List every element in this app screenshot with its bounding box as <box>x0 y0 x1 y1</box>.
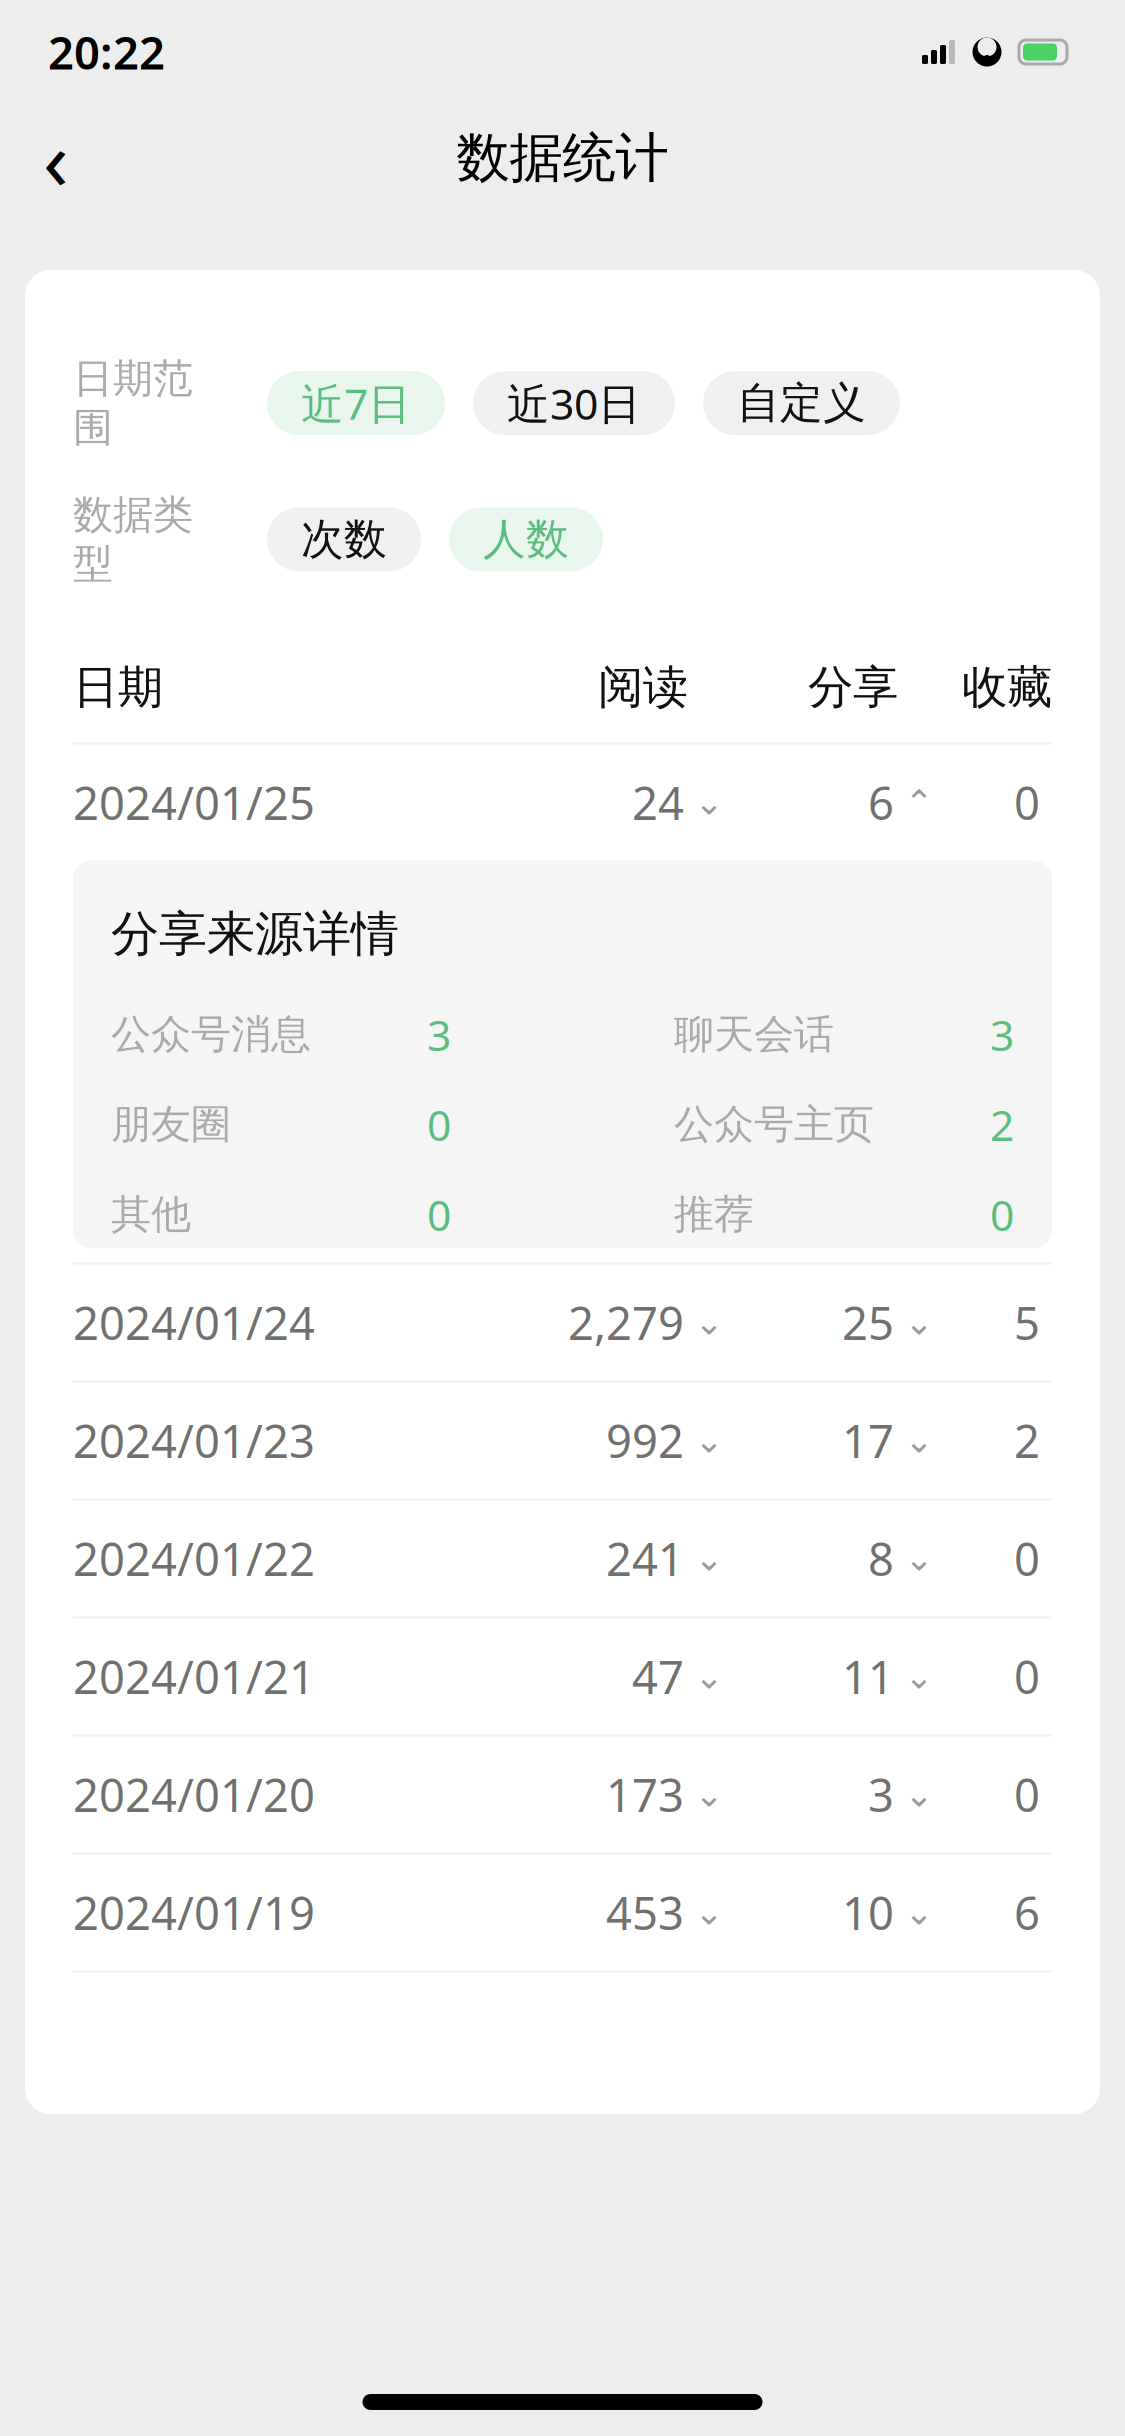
staticText: 6 <box>868 772 894 833</box>
staticText: 阅读 <box>598 660 688 715</box>
staticText: 近30日 <box>507 375 641 431</box>
button[interactable]: Back <box>18 120 94 196</box>
staticText: 0 <box>1014 772 1040 833</box>
staticText: 453 <box>606 1882 684 1943</box>
staticText: 0 <box>1014 1646 1040 1707</box>
staticText: 241 <box>606 1528 684 1589</box>
button[interactable]: 2024/01/21 <box>73 1618 1052 1734</box>
staticText: 聊天会话 <box>674 1010 834 1059</box>
staticText: ‹ <box>43 103 69 213</box>
staticText: 分享来源详情 <box>111 904 399 963</box>
staticText: 2024/01/20 <box>73 1764 315 1825</box>
staticText: 2024/01/21 <box>73 1646 315 1707</box>
staticText: ⌄ <box>904 1657 933 1696</box>
staticText: ⌄ <box>694 1775 723 1814</box>
staticText: ⌄ <box>694 1539 723 1578</box>
staticText: 3 <box>427 1006 451 1063</box>
staticText: 8 <box>868 1528 894 1589</box>
button[interactable]: 2024/01/22 <box>73 1500 1052 1616</box>
button[interactable]: 人数 <box>449 507 603 571</box>
staticText: 数据类型 <box>73 490 193 589</box>
staticText: 3 <box>868 1764 894 1825</box>
staticText: 3 <box>990 1006 1014 1063</box>
button[interactable]: 自定义 <box>703 371 900 435</box>
staticText: 0 <box>427 1096 451 1153</box>
staticText: 分享 <box>808 660 898 715</box>
button[interactable]: 2024/01/19 <box>73 1854 1052 1970</box>
staticText: 5 <box>1014 1292 1040 1353</box>
staticText: ⌄ <box>904 1539 933 1578</box>
button[interactable]: 近7日 <box>267 371 445 435</box>
staticText: 自定义 <box>737 377 866 429</box>
staticText: ⌃ <box>904 783 933 822</box>
staticText: 人数 <box>483 513 569 566</box>
staticText: 近7日 <box>301 375 411 431</box>
staticText: ⌄ <box>694 1893 723 1932</box>
staticText: 2024/01/24 <box>73 1292 315 1353</box>
staticText: 其他 <box>111 1190 191 1239</box>
button[interactable]: 近30日 <box>473 371 675 435</box>
staticText: 10 <box>842 1882 894 1943</box>
staticText: ⌄ <box>904 1893 933 1932</box>
staticText: ⌄ <box>694 1657 723 1696</box>
staticText: 2024/01/19 <box>73 1882 315 1943</box>
staticText: 0 <box>1014 1764 1040 1825</box>
staticText: 2024/01/25 <box>73 772 315 833</box>
staticText: 朋友圈 <box>111 1100 231 1149</box>
staticText: 推荐 <box>674 1190 754 1239</box>
staticText: 2 <box>990 1096 1014 1153</box>
staticText: ⌄ <box>694 1303 723 1342</box>
button[interactable]: 2024/01/20 <box>73 1736 1052 1852</box>
staticText: 公众号主页 <box>674 1100 874 1149</box>
staticText: 173 <box>606 1764 684 1825</box>
staticText: 2,279 <box>568 1292 684 1353</box>
staticText: ⌄ <box>904 1775 933 1814</box>
staticText: 992 <box>606 1410 684 1471</box>
staticText: ⌄ <box>904 1421 933 1460</box>
staticText: 11 <box>842 1646 894 1707</box>
staticText: 日期范围 <box>73 354 193 452</box>
staticText: 25 <box>842 1292 894 1353</box>
staticText: ⌄ <box>694 783 723 822</box>
staticText: 数据统计 <box>456 125 668 191</box>
staticText: 20:22 <box>48 22 165 82</box>
staticText: 2024/01/23 <box>73 1410 315 1471</box>
staticText: 47 <box>632 1646 684 1707</box>
button[interactable]: 2024/01/25 <box>73 744 1052 860</box>
staticText: 24 <box>632 772 684 833</box>
staticText: 2 <box>1014 1410 1040 1471</box>
staticText: 0 <box>990 1186 1014 1243</box>
button[interactable]: 2024/01/23 <box>73 1382 1052 1498</box>
staticText: 0 <box>1014 1528 1040 1589</box>
staticText: 0 <box>427 1186 451 1243</box>
staticText: 6 <box>1014 1882 1040 1943</box>
staticText: ⌄ <box>694 1421 723 1460</box>
staticText: ⌄ <box>904 1303 933 1342</box>
staticText: 次数 <box>301 513 387 566</box>
staticText: 日期 <box>73 660 163 715</box>
staticText: 17 <box>842 1410 894 1471</box>
button[interactable]: 次数 <box>267 507 421 571</box>
staticText: 公众号消息 <box>111 1010 311 1059</box>
staticText: 收藏 <box>962 660 1052 715</box>
staticText: 2024/01/22 <box>73 1528 315 1589</box>
button[interactable]: 2024/01/24 <box>73 1264 1052 1380</box>
